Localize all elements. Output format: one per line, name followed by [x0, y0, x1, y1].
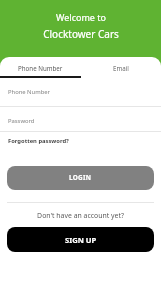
- staticText: Password: [8, 117, 35, 125]
- button[interactable]: LOGIN: [7, 166, 154, 190]
- staticText: Phone Number: [18, 64, 63, 72]
- staticText: Welcome to: [56, 11, 106, 23]
- staticText: Don't have an account yet?: [37, 211, 124, 220]
- button[interactable]: SIGN UP: [7, 227, 154, 252]
- button[interactable]: Email: [80, 57, 161, 79]
- staticText: Email: [113, 64, 129, 72]
- button[interactable]: Password: [0, 112, 161, 131]
- staticText: Phone Number: [8, 88, 50, 96]
- staticText: SIGN UP: [65, 235, 97, 245]
- button[interactable]: Forgotten password?: [0, 136, 69, 145]
- staticText: Clocktower Cars: [43, 27, 119, 41]
- button[interactable]: Phone Number: [0, 57, 80, 79]
- button[interactable]: Phone Number: [0, 84, 161, 106]
- staticText: LOGIN: [69, 173, 92, 182]
- staticText: Forgotten password?: [8, 137, 69, 145]
